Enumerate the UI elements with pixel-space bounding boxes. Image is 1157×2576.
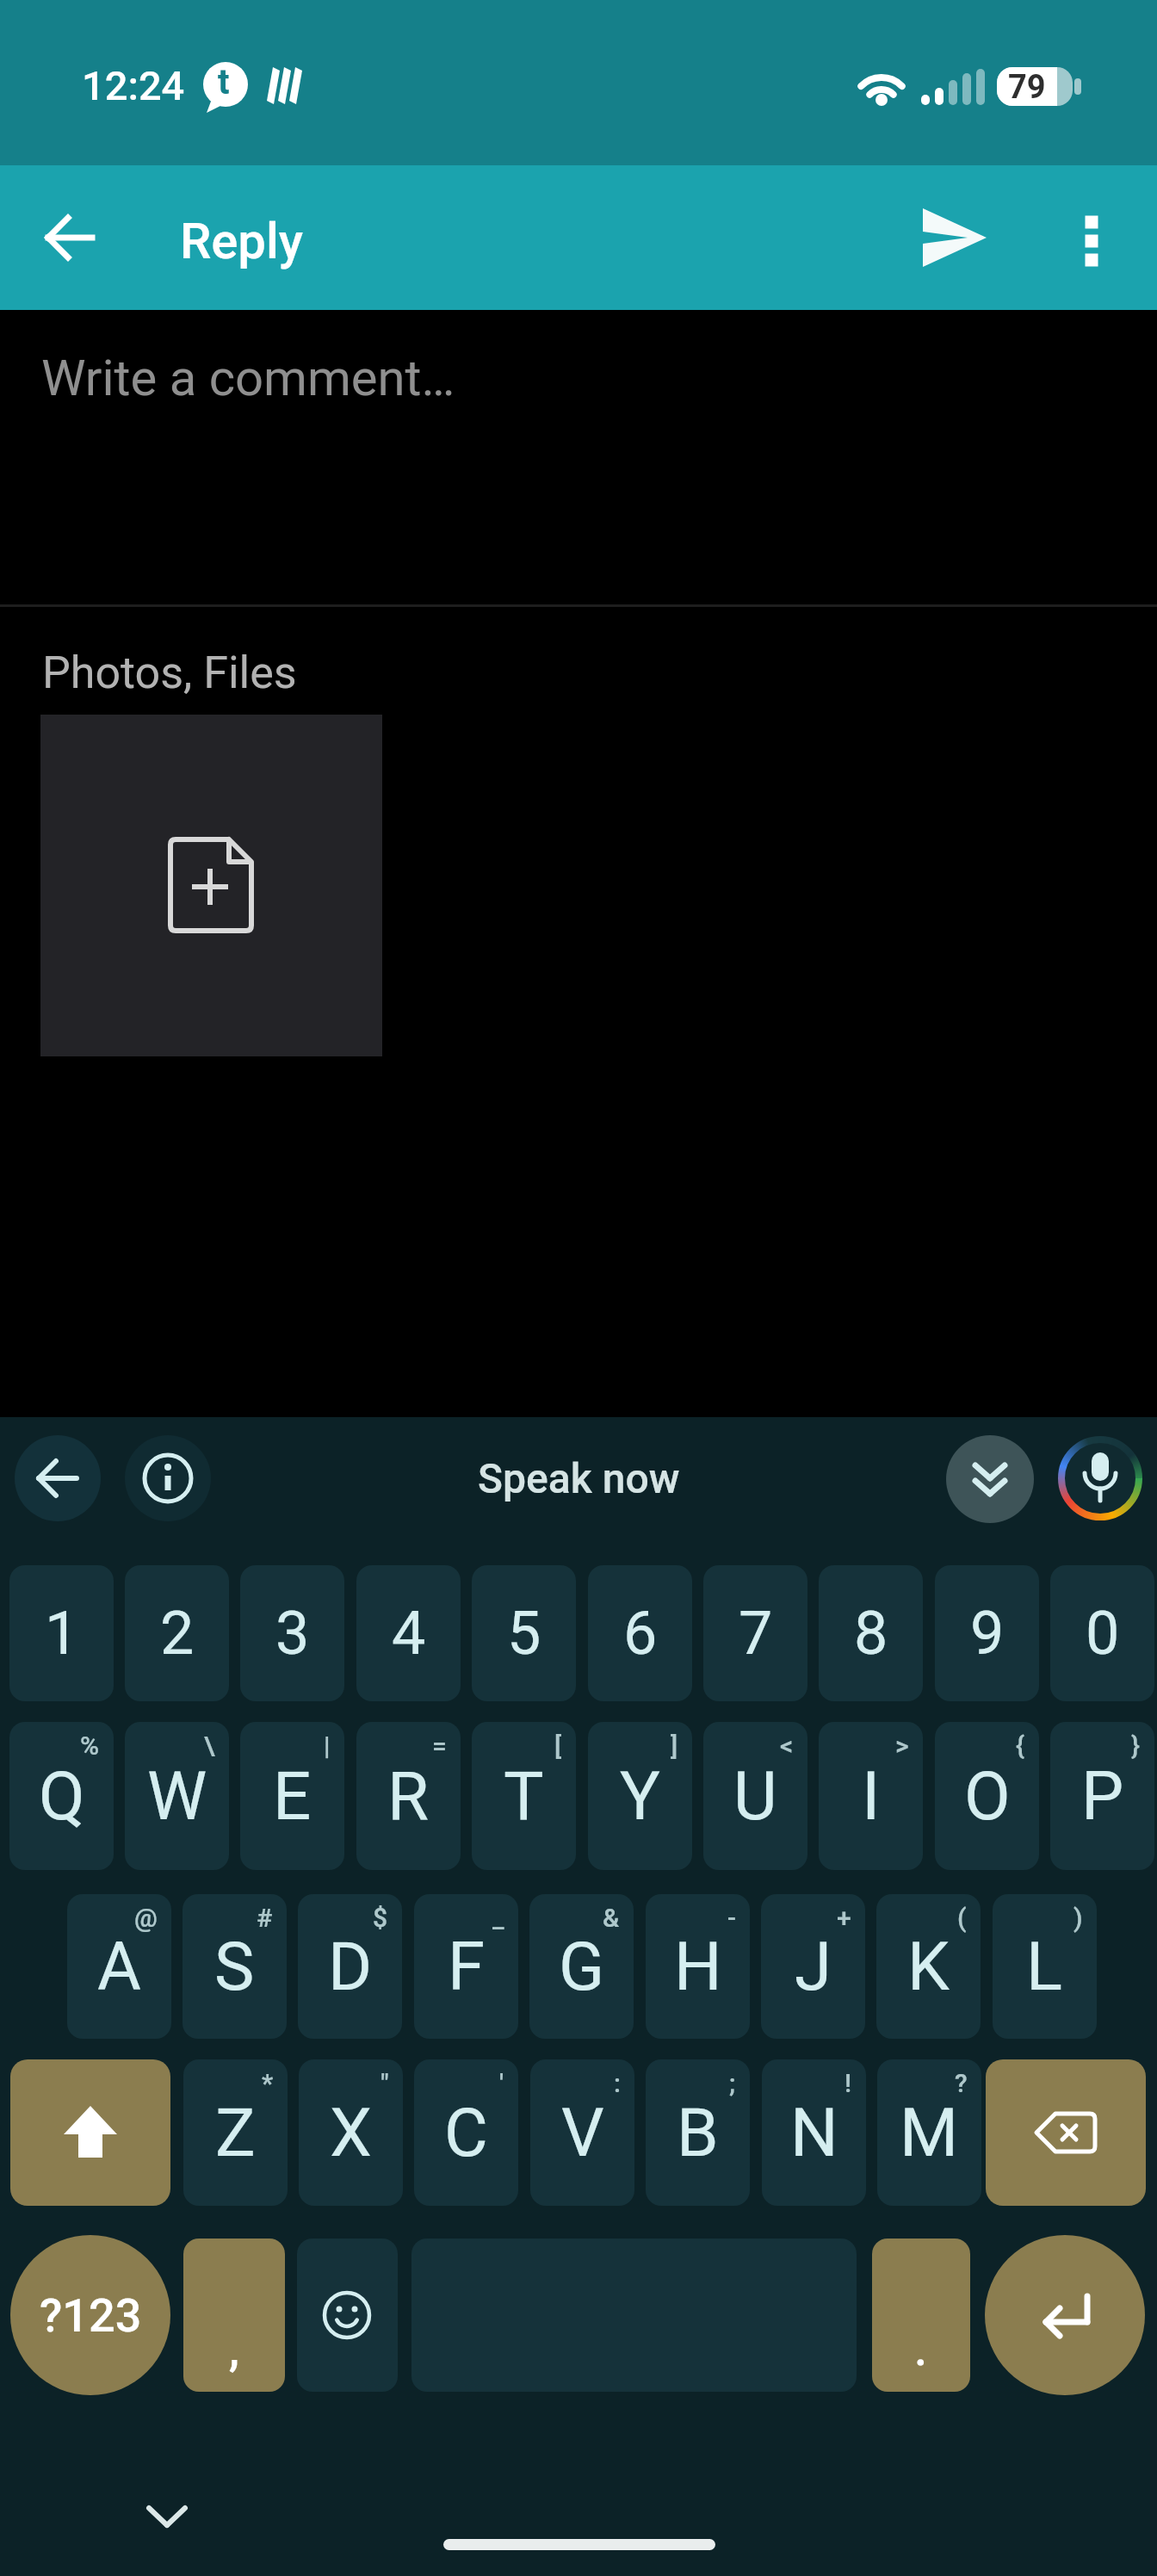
staticText: 7 xyxy=(739,1598,773,1669)
button[interactable]: I xyxy=(819,1722,923,1870)
button[interactable]: L xyxy=(993,1894,1097,2039)
staticText: M xyxy=(900,2094,959,2172)
button[interactable] xyxy=(15,1435,101,1521)
staticText: % xyxy=(80,1731,100,1761)
staticText: B xyxy=(677,2094,719,2172)
button[interactable]: E xyxy=(240,1722,344,1870)
button[interactable]: 5 xyxy=(472,1565,576,1701)
staticText: Speak now xyxy=(478,1454,680,1502)
staticText: \ xyxy=(204,1731,215,1761)
button[interactable]: 7 xyxy=(703,1565,807,1701)
staticText: X xyxy=(330,2094,372,2172)
button[interactable] xyxy=(986,2059,1146,2206)
staticText: V xyxy=(561,2094,604,2172)
button[interactable]: 4 xyxy=(356,1565,461,1701)
staticText: ) xyxy=(1073,1903,1083,1933)
staticText: T xyxy=(504,1757,544,1836)
staticText: 5 xyxy=(507,1598,541,1669)
button[interactable]: P xyxy=(1050,1722,1154,1870)
button[interactable]: S xyxy=(183,1894,287,2039)
button[interactable] xyxy=(1047,193,1136,282)
staticText: A xyxy=(97,1928,141,2006)
button[interactable]: 2 xyxy=(125,1565,229,1701)
button[interactable] xyxy=(985,2235,1145,2395)
button[interactable]: X xyxy=(299,2059,403,2206)
staticText: ( xyxy=(957,1903,967,1933)
button[interactable]: ?123 xyxy=(10,2235,170,2395)
button[interactable]: 9 xyxy=(935,1565,1039,1701)
button[interactable]: D xyxy=(298,1894,402,2039)
staticText: 79 xyxy=(1008,68,1046,107)
button[interactable]: , xyxy=(183,2239,285,2392)
staticText: U xyxy=(733,1757,777,1836)
button[interactable]: F xyxy=(414,1894,518,2039)
staticText: Reply xyxy=(180,212,304,270)
staticText: ! xyxy=(845,2068,852,2098)
staticText: 8 xyxy=(854,1598,888,1669)
staticText: Photos, Files xyxy=(42,647,297,699)
button[interactable]: V xyxy=(530,2059,634,2206)
button[interactable] xyxy=(946,1435,1034,1523)
button[interactable] xyxy=(26,193,115,282)
staticText: = xyxy=(432,1731,447,1761)
staticText: ; xyxy=(729,2068,736,2098)
button[interactable] xyxy=(125,1435,211,1521)
button[interactable]: 1 xyxy=(9,1565,114,1701)
staticText: G xyxy=(559,1928,605,2006)
staticText: : xyxy=(614,2068,621,2098)
button[interactable]: 3 xyxy=(240,1565,344,1701)
staticText: F xyxy=(448,1928,486,2006)
staticText: R xyxy=(387,1757,430,1836)
staticText: J xyxy=(795,1928,832,2006)
staticText: > xyxy=(895,1731,909,1761)
button[interactable]: N xyxy=(762,2059,866,2206)
staticText: O xyxy=(964,1757,1011,1836)
staticText: $ xyxy=(373,1903,388,1933)
staticText: 9 xyxy=(970,1598,1005,1669)
button[interactable]: B xyxy=(646,2059,750,2206)
staticText: + xyxy=(837,1903,851,1933)
button[interactable] xyxy=(1057,1435,1143,1521)
staticText: < xyxy=(780,1731,794,1761)
button[interactable]: M xyxy=(877,2059,981,2206)
staticText: K xyxy=(907,1928,950,2006)
button[interactable]: Y xyxy=(588,1722,692,1870)
staticText: Write a comment… xyxy=(41,349,455,407)
button[interactable]: 6 xyxy=(588,1565,692,1701)
staticText: @ xyxy=(134,1903,158,1933)
button[interactable]: T xyxy=(472,1722,576,1870)
button[interactable]: H xyxy=(646,1894,750,2039)
button[interactable]: R xyxy=(356,1722,461,1870)
button[interactable]: . xyxy=(872,2239,970,2392)
button[interactable]: A xyxy=(67,1894,171,2039)
staticText: - xyxy=(727,1903,736,1933)
button[interactable] xyxy=(40,715,382,1056)
staticText: Z xyxy=(215,2094,256,2172)
staticText: 4 xyxy=(392,1598,426,1669)
button[interactable]: G xyxy=(529,1894,634,2039)
staticText: 2 xyxy=(160,1598,195,1669)
staticText: . xyxy=(914,2322,928,2376)
button[interactable]: C xyxy=(414,2059,518,2206)
button[interactable]: O xyxy=(935,1722,1039,1870)
staticText: E xyxy=(273,1757,312,1836)
button[interactable]: U xyxy=(703,1722,807,1870)
button[interactable]: 8 xyxy=(819,1565,923,1701)
button[interactable] xyxy=(297,2239,398,2392)
button[interactable] xyxy=(909,193,999,282)
staticText: 6 xyxy=(623,1598,658,1669)
button[interactable]: K xyxy=(876,1894,981,2039)
button[interactable] xyxy=(10,2059,170,2206)
staticText: 1 xyxy=(45,1598,79,1669)
button[interactable]: Z xyxy=(183,2059,288,2206)
staticText: ?123 xyxy=(40,2288,142,2343)
button[interactable]: Q xyxy=(9,1722,114,1870)
button[interactable]: J xyxy=(761,1894,865,2039)
staticText: 0 xyxy=(1086,1598,1120,1669)
button[interactable]: 0 xyxy=(1050,1565,1154,1701)
button[interactable]: Write a comment… xyxy=(0,327,1157,534)
button[interactable]: W xyxy=(125,1722,229,1870)
staticText: W xyxy=(147,1757,207,1836)
staticText: Y xyxy=(620,1757,660,1836)
